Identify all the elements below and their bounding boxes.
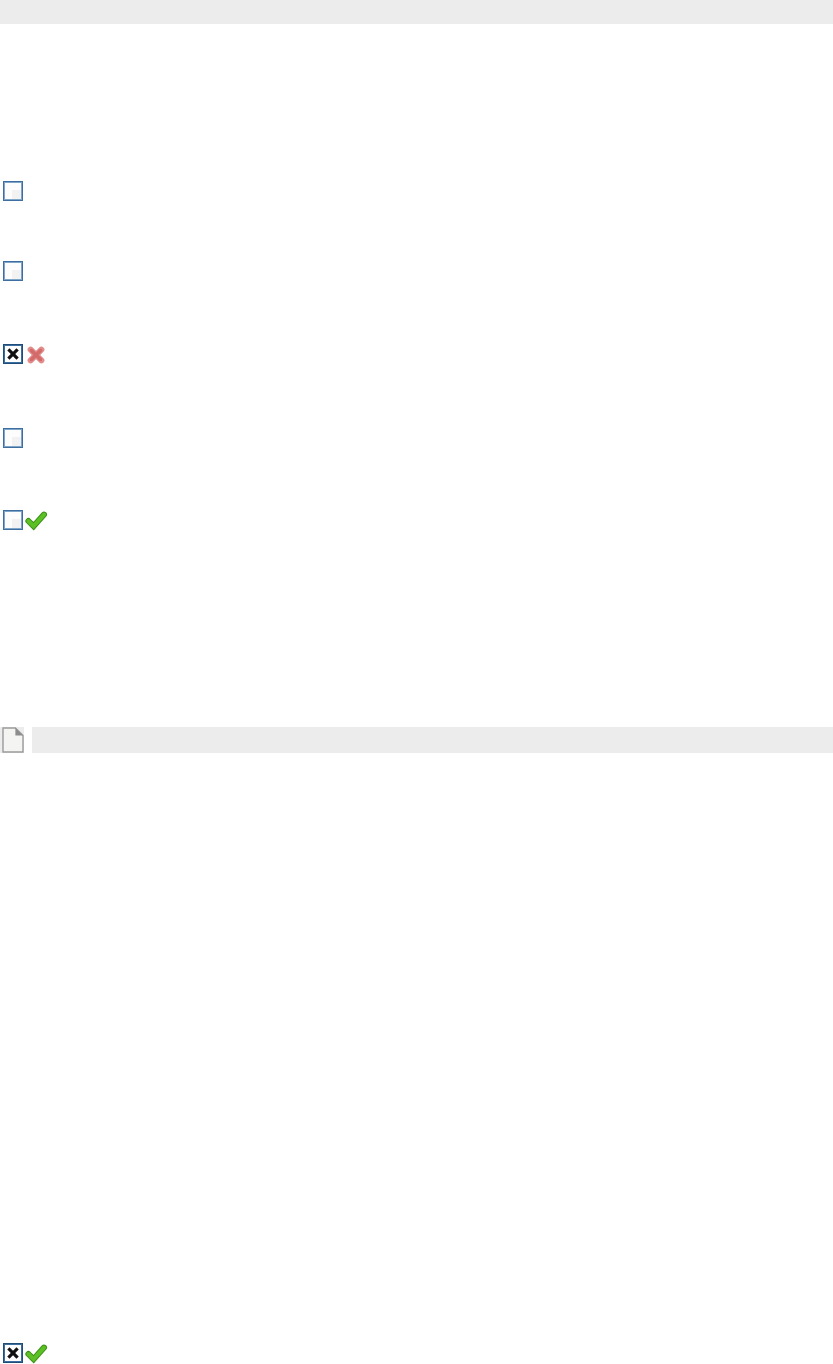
button[interactable]: Unchecked checkbox: [3, 181, 23, 201]
button[interactable]: Checked checkbox: [3, 1343, 23, 1363]
button[interactable]: Passed: [26, 511, 46, 531]
button[interactable]: Unchecked checkbox: [3, 428, 23, 448]
button[interactable]: Failed: [26, 345, 46, 365]
button[interactable]: Unchecked checkbox: [3, 510, 23, 530]
button[interactable]: Unchecked checkbox: [3, 261, 23, 281]
button[interactable]: Checked checkbox: [3, 344, 23, 364]
button[interactable]: Passed: [26, 1344, 46, 1364]
button[interactable]: Document: [3, 728, 23, 752]
